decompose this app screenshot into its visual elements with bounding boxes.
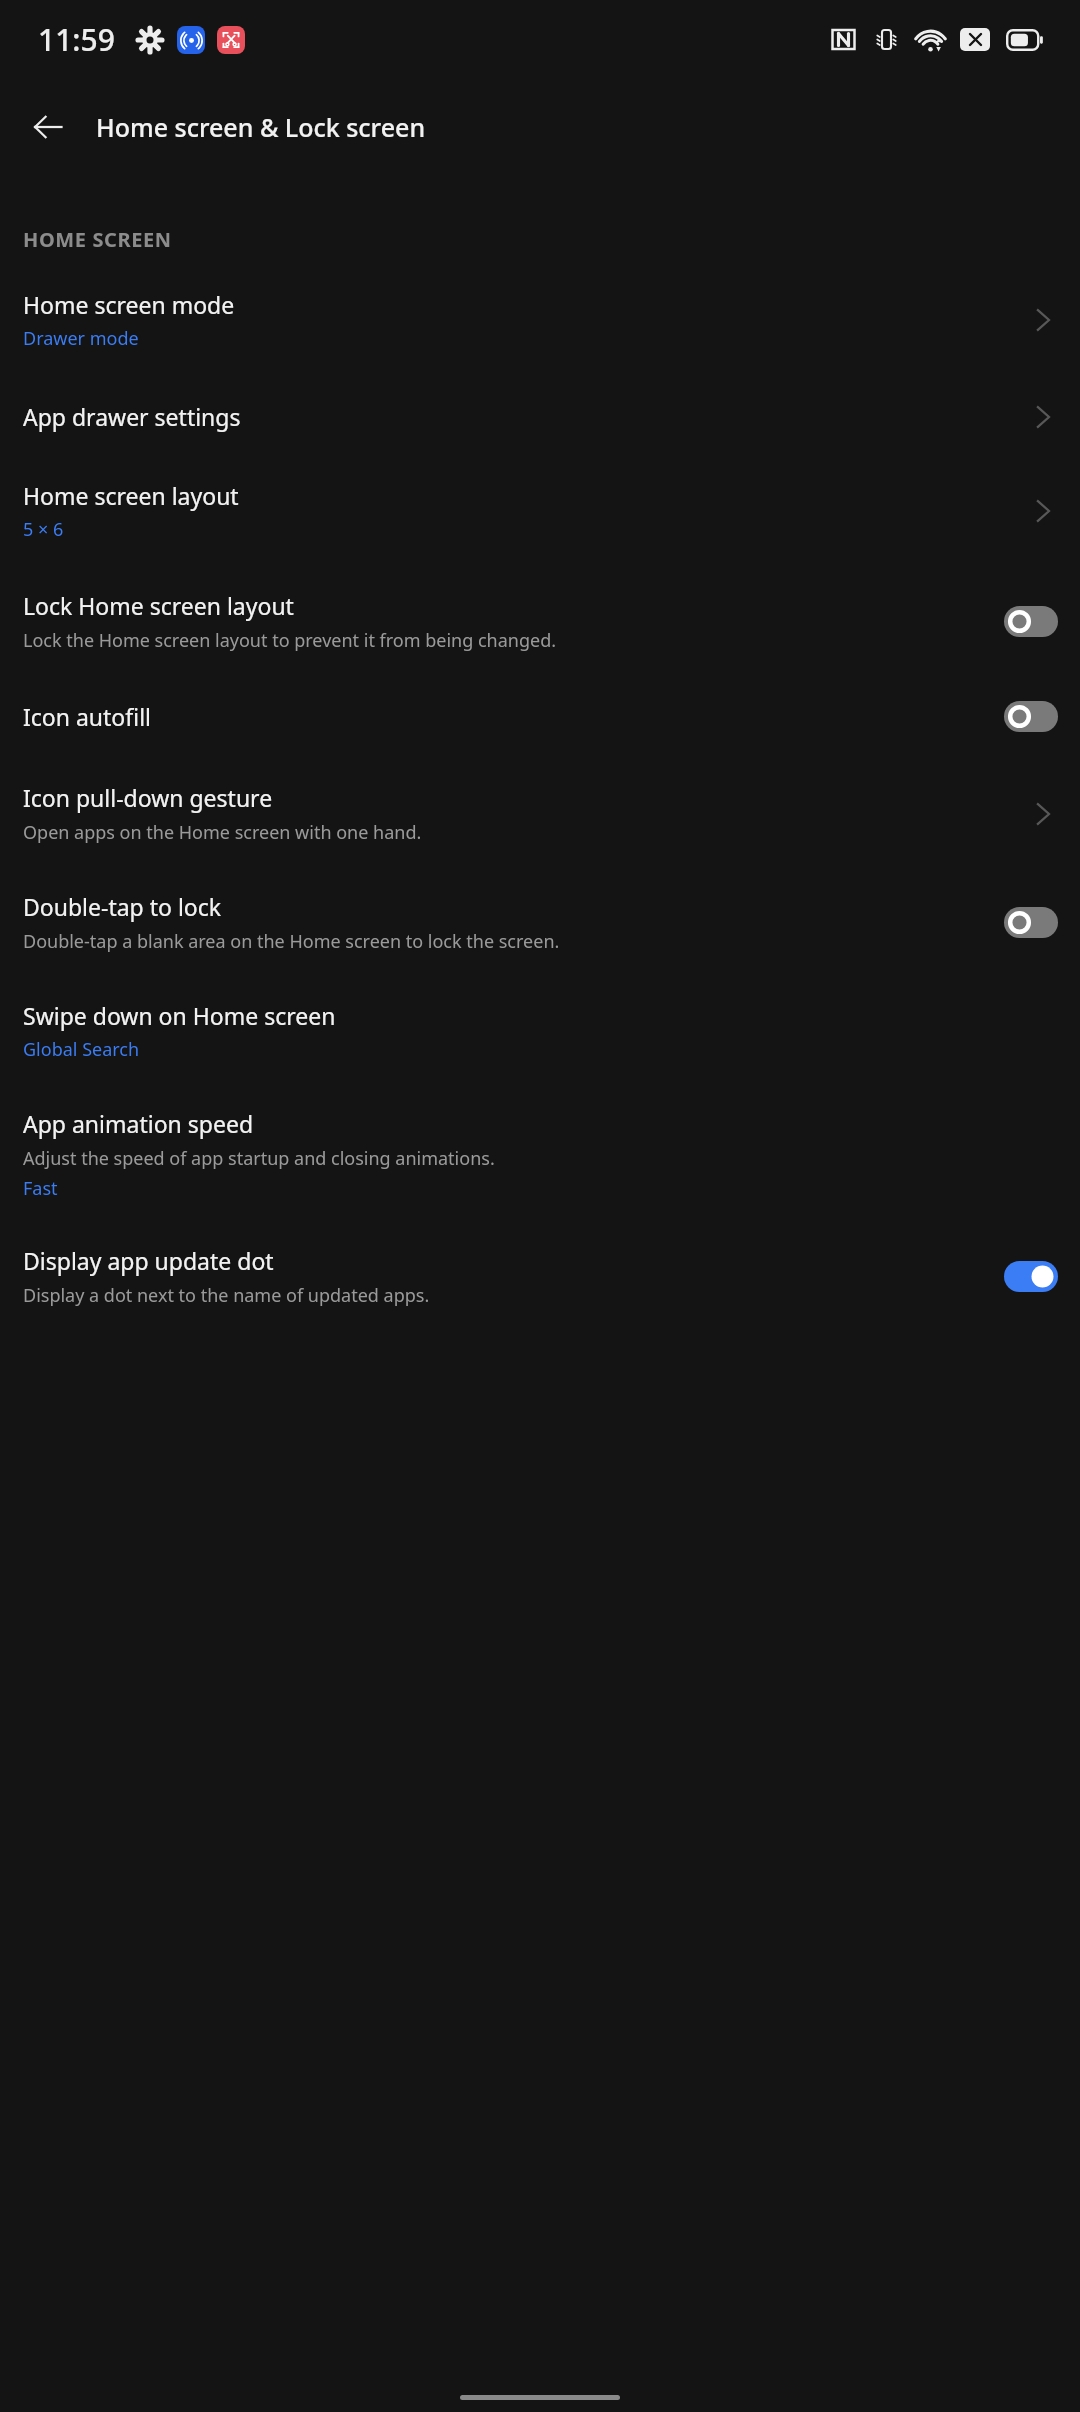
staticText: Icon autofill bbox=[23, 701, 151, 732]
staticText: Double-tap a blank area on the Home scre… bbox=[23, 929, 560, 954]
staticText: Home screen layout bbox=[23, 480, 239, 511]
staticText: Double-tap to lock bbox=[23, 891, 222, 922]
staticText: 5 × 6 bbox=[23, 517, 64, 542]
staticText: HOME SCREEN bbox=[23, 226, 172, 253]
button[interactable]: Icon autofill bbox=[0, 675, 1080, 758]
button[interactable]: Home screen mode bbox=[0, 275, 1080, 375]
button[interactable]: Swipe down on Home screen bbox=[0, 976, 1080, 1086]
button[interactable]: Double-tap to lock bbox=[0, 867, 1080, 976]
staticText: 11:59 bbox=[38, 19, 115, 60]
staticText: Drawer mode bbox=[23, 326, 139, 351]
staticText: Swipe down on Home screen bbox=[23, 1000, 336, 1031]
staticText: Open apps on the Home screen with one ha… bbox=[23, 820, 422, 845]
button[interactable]: Display app update dot bbox=[0, 1223, 1080, 1326]
button[interactable]: Lock Home screen layout bbox=[0, 566, 1080, 675]
staticText: Display app update dot bbox=[23, 1245, 274, 1276]
button[interactable]: Home screen layout bbox=[0, 458, 1080, 566]
staticText: Home screen & Lock screen bbox=[96, 110, 426, 144]
staticText: App animation speed bbox=[23, 1108, 254, 1139]
button[interactable]: Back bbox=[22, 101, 74, 153]
staticText: Global Search bbox=[23, 1037, 140, 1062]
button[interactable]: App drawer settings bbox=[0, 375, 1080, 458]
staticText: Adjust the speed of app startup and clos… bbox=[23, 1146, 495, 1171]
staticText: Fast bbox=[23, 1176, 58, 1201]
button[interactable]: App animation speed bbox=[0, 1086, 1080, 1223]
staticText: Icon pull-down gesture bbox=[23, 782, 273, 813]
staticText: Home screen mode bbox=[23, 289, 235, 320]
staticText: Lock the Home screen layout to prevent i… bbox=[23, 628, 557, 653]
button[interactable]: Icon pull-down gesture bbox=[0, 758, 1080, 867]
staticText: Display a dot next to the name of update… bbox=[23, 1283, 430, 1308]
staticText: Lock Home screen layout bbox=[23, 590, 294, 621]
staticText: App drawer settings bbox=[23, 401, 241, 432]
